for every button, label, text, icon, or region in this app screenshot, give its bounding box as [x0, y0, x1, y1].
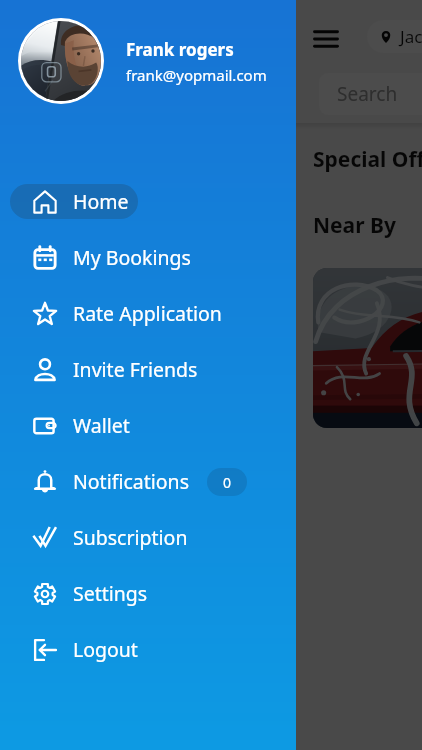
staticText: 0 [223, 473, 232, 492]
button[interactable]: Open navigation menu [314, 27, 338, 51]
button[interactable] [313, 268, 422, 428]
button[interactable]: Rate Application [10, 296, 222, 331]
button[interactable]: Settings [10, 576, 148, 611]
staticText: Logout [73, 636, 138, 663]
staticText: Invite Friends [73, 356, 198, 383]
staticText: Search [337, 81, 398, 107]
staticText: Settings [73, 580, 148, 607]
button[interactable]: Search [319, 73, 422, 115]
button[interactable]: Notifications [10, 464, 247, 499]
staticText: Subscription [73, 524, 188, 551]
button[interactable]: Invite Friends [10, 352, 198, 387]
staticText: My Bookings [73, 244, 191, 271]
staticText: Wallet [73, 412, 130, 439]
button[interactable]: My Bookings [10, 240, 191, 275]
staticText: Near By [313, 211, 396, 240]
button[interactable]: Logout [10, 632, 138, 667]
staticText: Special Offers [313, 145, 422, 174]
staticText: Rate Application [73, 300, 222, 327]
button[interactable]: Subscription [10, 520, 188, 555]
staticText: Home [73, 188, 129, 215]
button[interactable]: Home [10, 184, 138, 219]
staticText: Notifications [73, 468, 189, 495]
staticText: frank@yopmail.com [126, 65, 267, 85]
button[interactable]: Jackson [367, 20, 422, 53]
staticText: Jackson [400, 25, 422, 48]
staticText: Frank rogers [126, 38, 234, 61]
button[interactable]: Wallet [10, 408, 130, 443]
